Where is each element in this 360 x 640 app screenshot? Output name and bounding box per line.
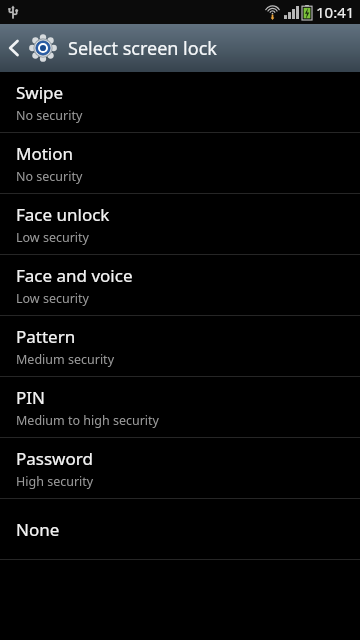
button[interactable]: Password — [0, 438, 360, 498]
staticText: Medium to high security — [16, 412, 159, 429]
staticText: Face unlock — [16, 203, 110, 226]
button[interactable]: Pattern — [0, 316, 360, 376]
staticText: Pattern — [16, 325, 76, 348]
staticText: High security — [16, 473, 94, 490]
staticText: Select screen lock — [68, 36, 217, 61]
staticText: No security — [16, 107, 83, 124]
button[interactable]: Navigate up — [0, 24, 221, 72]
button[interactable]: Face unlock — [0, 194, 360, 254]
staticText: No security — [16, 168, 83, 185]
staticText: Face and voice — [16, 264, 133, 287]
staticText: Motion — [16, 142, 74, 165]
button[interactable]: Face and voice — [0, 255, 360, 315]
button[interactable]: Swipe — [0, 72, 360, 132]
staticText: Medium security — [16, 351, 115, 368]
staticText: PIN — [16, 386, 45, 409]
staticText: Low security — [16, 229, 89, 246]
staticText: Password — [16, 447, 93, 470]
staticText: Low security — [16, 290, 89, 307]
button[interactable]: PIN — [0, 377, 360, 437]
button[interactable]: Motion — [0, 133, 360, 193]
staticText: Swipe — [16, 81, 64, 104]
button[interactable]: None — [0, 499, 360, 559]
staticText: 10:41 — [316, 2, 355, 22]
staticText: None — [16, 518, 60, 541]
